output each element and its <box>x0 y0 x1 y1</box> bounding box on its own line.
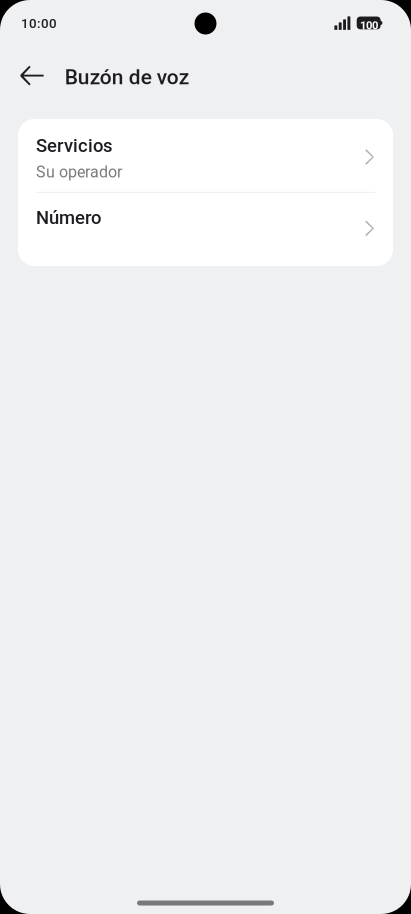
staticText: Su operador <box>36 163 122 181</box>
staticText: Buzón de voz <box>65 65 189 89</box>
button[interactable]: Servicios <box>18 119 393 192</box>
button[interactable]: Back <box>8 52 56 100</box>
staticText: Servicios <box>36 135 112 157</box>
staticText: Número <box>36 207 101 229</box>
staticText: 10:00 <box>21 16 57 31</box>
button[interactable]: Número <box>18 193 393 266</box>
staticText: 100 <box>360 19 378 32</box>
